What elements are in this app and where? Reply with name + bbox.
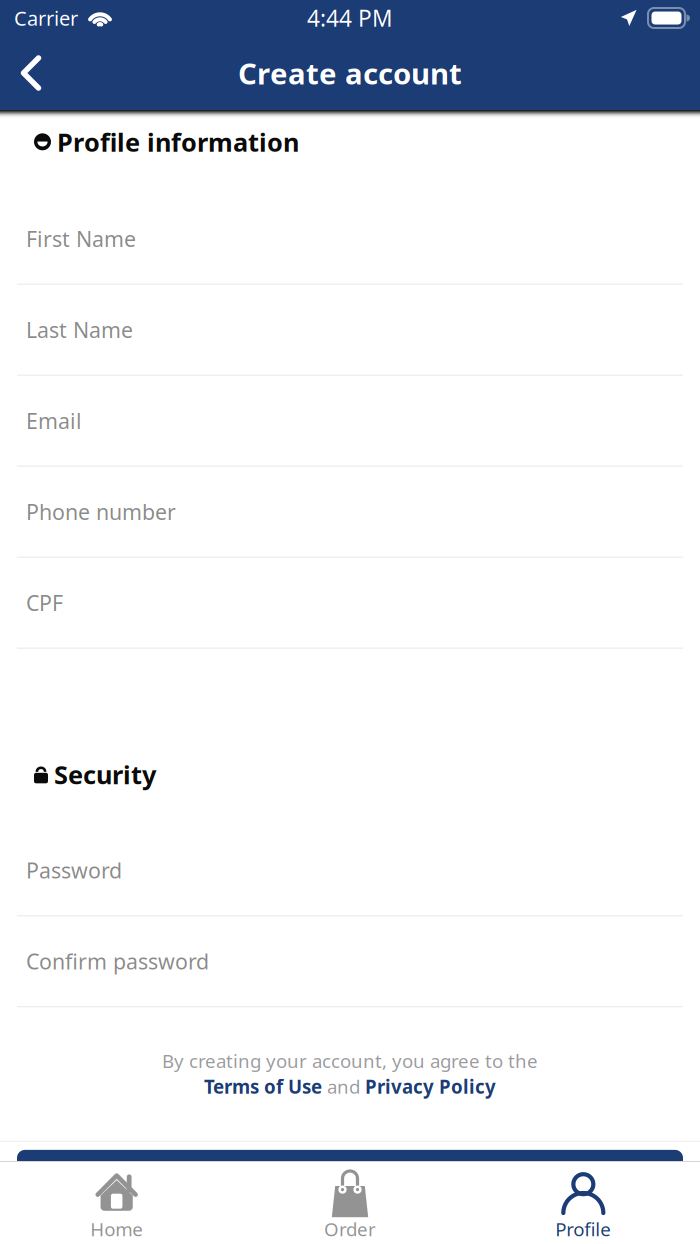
staticText: Email xyxy=(26,406,82,435)
staticText: CPF xyxy=(26,588,63,617)
staticText: By creating your account, you agree to t… xyxy=(162,1048,538,1073)
staticText: Home xyxy=(90,1217,143,1241)
staticText: and xyxy=(327,1074,360,1099)
button[interactable]: Back xyxy=(0,43,62,103)
button[interactable]: Order xyxy=(233,1172,467,1239)
staticText: Privacy Policy xyxy=(365,1074,496,1099)
staticText: Profile information xyxy=(57,125,299,159)
staticText: Create account xyxy=(238,53,462,92)
staticText: 4:44 PM xyxy=(307,3,393,33)
button[interactable]: Home xyxy=(0,1172,233,1239)
staticText: Password xyxy=(26,856,122,884)
staticText: Last Name xyxy=(26,315,133,344)
staticText: Terms of Use xyxy=(204,1074,322,1099)
staticText: Create account xyxy=(262,1160,437,1190)
staticText: Carrier xyxy=(14,5,78,31)
staticText: Confirm password xyxy=(26,947,209,975)
staticText: Order xyxy=(324,1217,376,1241)
staticText: Phone number xyxy=(26,497,176,526)
button[interactable]: Create account xyxy=(17,1150,683,1200)
button[interactable]: Profile xyxy=(467,1172,700,1239)
staticText: First Name xyxy=(26,224,136,253)
staticText: Profile xyxy=(555,1217,611,1241)
staticText: Security xyxy=(54,758,156,791)
